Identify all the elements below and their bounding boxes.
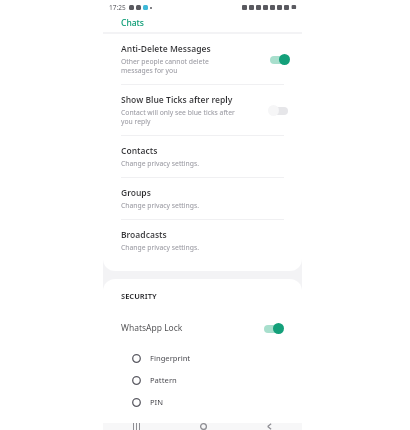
- staticText: 17:25: [109, 3, 126, 12]
- staticText: Chats: [121, 17, 144, 29]
- button[interactable]: Recent apps: [103, 423, 170, 430]
- button[interactable]: Anti-Delete Messages: [103, 34, 302, 84]
- button[interactable]: Pattern: [103, 369, 302, 391]
- button[interactable]: WhatsApp Lock: [103, 315, 302, 341]
- staticText: Groups: [121, 187, 151, 199]
- button[interactable]: Contacts: [103, 136, 302, 177]
- button[interactable]: Broadcasts: [103, 220, 302, 261]
- button[interactable]: Back: [236, 423, 302, 430]
- staticText: Contact will only see blue ticks after y…: [121, 108, 235, 126]
- staticText: Change privacy settings.: [121, 201, 200, 210]
- staticText: Pattern: [150, 375, 177, 385]
- button[interactable]: PIN: [103, 391, 302, 413]
- staticText: Broadcasts: [121, 229, 167, 241]
- staticText: Anti-Delete Messages: [121, 43, 211, 55]
- staticText: Other people cannot delete messages for …: [121, 57, 209, 75]
- button[interactable]: Groups: [103, 178, 302, 219]
- staticText: Contacts: [121, 145, 158, 157]
- button[interactable]: Home: [170, 423, 236, 430]
- staticText: PIN: [150, 397, 164, 407]
- staticText: Fingerprint: [150, 353, 191, 363]
- button[interactable]: Fingerprint: [103, 347, 302, 369]
- staticText: Change privacy settings.: [121, 243, 200, 252]
- staticText: Change privacy settings.: [121, 159, 200, 168]
- staticText: WhatsApp Lock: [121, 322, 262, 334]
- staticText: Show Blue Ticks after reply: [121, 94, 233, 106]
- staticText: SECURITY: [121, 291, 157, 301]
- button[interactable]: Show Blue Ticks after reply: [103, 85, 302, 135]
